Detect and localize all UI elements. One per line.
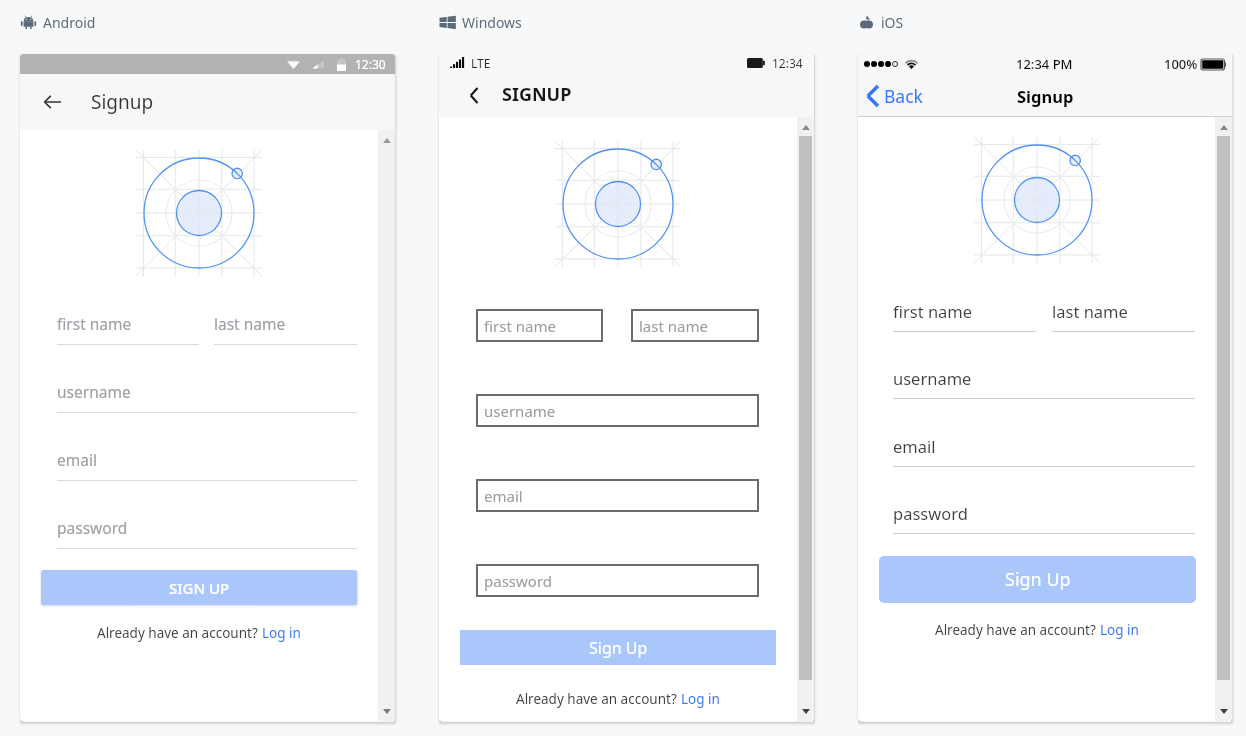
button[interactable]: first name xyxy=(57,313,199,345)
staticText: Already have an account? xyxy=(516,690,681,708)
staticText: 12:30 xyxy=(355,56,386,72)
button[interactable]: last name xyxy=(214,313,357,345)
staticText: password xyxy=(484,571,552,591)
staticText: Android xyxy=(43,13,96,32)
staticText: last name xyxy=(214,313,286,334)
button[interactable]: email xyxy=(476,479,759,512)
button[interactable]: first name xyxy=(476,309,603,342)
staticText: last name xyxy=(1052,300,1128,322)
button[interactable]: password xyxy=(893,502,1195,534)
staticText: first name xyxy=(893,300,973,322)
staticText: email xyxy=(893,435,936,457)
button[interactable]: Sign Up xyxy=(879,556,1196,603)
staticText: username xyxy=(57,381,131,402)
button[interactable]: password xyxy=(476,564,759,597)
staticText: Already have an account? xyxy=(935,621,1100,639)
staticText: last name xyxy=(639,316,708,336)
staticText: iOS xyxy=(881,13,904,32)
staticText: username xyxy=(893,367,972,389)
staticText: Already have an account? xyxy=(97,624,262,642)
staticText: 100% xyxy=(1164,55,1198,73)
button[interactable]: username xyxy=(893,367,1195,399)
button[interactable]: email xyxy=(893,435,1195,467)
staticText: Log in xyxy=(681,690,720,708)
button[interactable]: first name xyxy=(893,300,1036,332)
staticText: Sign Up xyxy=(1005,567,1071,592)
staticText: email xyxy=(57,449,97,470)
button[interactable]: last name xyxy=(1052,300,1195,332)
staticText: 12:34 xyxy=(772,55,803,71)
staticText: SIGNUP xyxy=(502,82,572,107)
button[interactable]: last name xyxy=(631,309,759,342)
staticText: Windows xyxy=(462,13,522,32)
staticText: Back xyxy=(884,84,923,108)
button[interactable]: Log in xyxy=(681,690,720,708)
staticText: LTE xyxy=(471,55,491,71)
staticText: Log in xyxy=(1100,621,1139,639)
button[interactable]: Back xyxy=(461,82,487,108)
staticText: password xyxy=(57,517,128,538)
staticText: username xyxy=(484,401,556,421)
button[interactable]: username xyxy=(57,381,357,413)
button[interactable]: email xyxy=(57,449,357,481)
button[interactable]: password xyxy=(57,517,357,549)
button[interactable]: Back xyxy=(866,75,923,117)
button[interactable]: Log in xyxy=(1100,621,1139,639)
staticText: Sign Up xyxy=(589,637,648,659)
staticText: password xyxy=(893,502,968,524)
staticText: Log in xyxy=(262,624,301,642)
staticText: first name xyxy=(484,316,556,336)
button[interactable]: Sign Up xyxy=(460,630,776,665)
button[interactable]: Log in xyxy=(262,624,301,642)
button[interactable]: Back xyxy=(36,86,68,118)
staticText: Signup xyxy=(1017,85,1074,107)
staticText: SIGN UP xyxy=(169,578,230,598)
staticText: email xyxy=(484,486,523,506)
button[interactable]: username xyxy=(476,394,759,427)
staticText: first name xyxy=(57,313,132,334)
button[interactable]: SIGN UP xyxy=(41,570,357,605)
staticText: 12:34 PM xyxy=(1016,55,1073,73)
staticText: Signup xyxy=(91,89,154,115)
